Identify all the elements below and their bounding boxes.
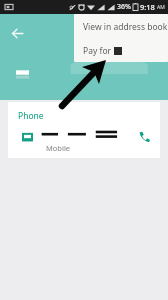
staticText: Pay for (83, 45, 114, 57)
button[interactable]: Call (132, 124, 156, 148)
staticText: AM (157, 4, 165, 11)
staticText: 36% (117, 2, 131, 12)
button[interactable]: View in address book (74, 14, 168, 39)
staticText: Phone (18, 110, 44, 122)
staticText: View in address book (83, 21, 168, 33)
staticText: Mobile (46, 143, 71, 153)
button[interactable]: Back (4, 20, 30, 46)
button[interactable]: Phone (8, 102, 160, 158)
staticText: 9:18 (140, 2, 155, 12)
button[interactable]: Pay for (74, 39, 168, 62)
